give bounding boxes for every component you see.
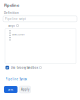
button[interactable]: Pipeline Syntax <box>5 77 26 81</box>
staticText: Apply <box>21 88 29 91</box>
button[interactable]: Apply <box>19 86 30 93</box>
staticText: Definition <box>4 11 19 15</box>
staticText: Pipeline Syntax <box>5 77 26 81</box>
staticText: pipeline { agent any <box>12 34 25 36</box>
staticText: Pipeline script <box>5 17 26 21</box>
staticText: Use Groovy Sandbox <box>11 66 38 69</box>
staticText: Pipeline <box>4 3 19 8</box>
staticText: Script <box>8 24 15 27</box>
button[interactable]: Save <box>4 86 17 93</box>
staticText: Save <box>8 88 14 91</box>
